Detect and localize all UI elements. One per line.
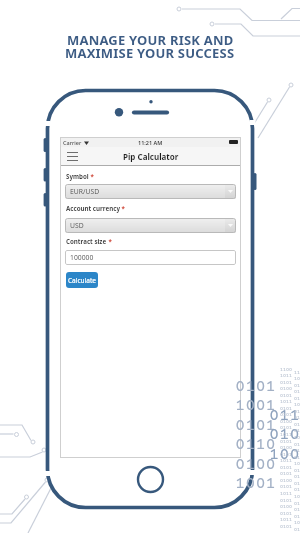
staticText: EUR/USD bbox=[70, 187, 100, 196]
staticText: * bbox=[107, 237, 112, 245]
staticText: * bbox=[120, 204, 125, 212]
staticText: 100000 bbox=[70, 253, 94, 262]
staticText: 0100 bbox=[294, 507, 300, 513]
staticText: MAXIMISE YOUR SUCCESS bbox=[65, 44, 235, 62]
staticText: MANAGE YOUR RISK AND bbox=[67, 31, 234, 49]
staticText: 0100 bbox=[280, 445, 292, 451]
staticText: 0100 bbox=[280, 504, 292, 510]
staticText: Calculate bbox=[68, 276, 96, 285]
staticText: 1011 bbox=[294, 376, 300, 382]
staticText: 1001 bbox=[269, 446, 300, 465]
staticText: 0101 bbox=[294, 455, 300, 461]
staticText: 1011 bbox=[280, 517, 292, 523]
staticText: 0101 bbox=[294, 396, 300, 402]
staticText: 0101 bbox=[280, 393, 292, 399]
staticText: 0101 bbox=[280, 439, 292, 445]
staticText: 0110 bbox=[235, 436, 276, 455]
staticText: 0100 bbox=[280, 386, 292, 392]
staticText: 0100 bbox=[280, 419, 292, 425]
staticText: Pip Calculator bbox=[123, 151, 179, 162]
staticText: 0101 bbox=[294, 501, 300, 507]
staticText: 0101 bbox=[280, 465, 292, 471]
staticText: * bbox=[89, 172, 94, 180]
button[interactable] bbox=[67, 152, 78, 161]
staticText: 1001 bbox=[235, 397, 276, 416]
staticText: 0101 bbox=[280, 471, 292, 477]
staticText: 0101 bbox=[294, 383, 300, 389]
staticText: 0101 bbox=[294, 428, 300, 434]
staticText: 1011 bbox=[294, 494, 300, 500]
staticText: USD bbox=[70, 221, 84, 230]
staticText: 0100 bbox=[294, 448, 300, 454]
staticText: 0100 bbox=[269, 426, 300, 445]
staticText: 0101 bbox=[294, 474, 300, 480]
staticText: 0101 bbox=[235, 417, 276, 436]
button[interactable]: USD bbox=[65, 218, 236, 233]
staticText: 1100 bbox=[294, 370, 300, 376]
staticText: 0101 bbox=[294, 442, 300, 448]
staticText: 0101 bbox=[294, 409, 300, 415]
staticText: 0100 bbox=[294, 481, 300, 487]
staticText: 0101 bbox=[294, 487, 300, 493]
staticText: 0101 bbox=[294, 514, 300, 520]
staticText: 0101 bbox=[294, 527, 300, 533]
staticText: 1011 bbox=[280, 373, 292, 379]
staticText: 1011 bbox=[280, 432, 292, 438]
staticText: 1011 bbox=[294, 520, 300, 526]
staticText: 0101 bbox=[235, 378, 276, 397]
staticText: 0101 bbox=[280, 524, 292, 530]
staticText: 1011 bbox=[280, 399, 292, 405]
staticText: Symbol bbox=[66, 172, 89, 180]
staticText: Contract size bbox=[66, 237, 107, 245]
staticText: 0101 bbox=[280, 380, 292, 386]
staticText: 0101 bbox=[294, 468, 300, 474]
staticText: 0101 bbox=[280, 498, 292, 504]
staticText: 0100 bbox=[294, 389, 300, 395]
staticText: 0100 bbox=[280, 478, 292, 484]
staticText: 0101 bbox=[280, 484, 292, 490]
staticText: 0101 bbox=[280, 425, 292, 431]
staticText: 0110 bbox=[269, 407, 300, 426]
staticText: 1011 bbox=[294, 461, 300, 467]
staticText: 0101 bbox=[280, 452, 292, 458]
staticText: 0101 bbox=[280, 406, 292, 412]
button[interactable]: EUR/USD bbox=[65, 184, 236, 199]
staticText: 1001 bbox=[235, 475, 276, 494]
staticText: 1100 bbox=[280, 367, 292, 373]
button[interactable]: Calculate bbox=[66, 272, 98, 288]
staticText: 1011 bbox=[280, 491, 292, 497]
staticText: 0101 bbox=[280, 511, 292, 517]
staticText: Carrier bbox=[63, 139, 82, 146]
staticText: 0101 bbox=[294, 415, 300, 421]
staticText: 0100 bbox=[235, 456, 276, 475]
staticText: 1011 bbox=[280, 458, 292, 464]
staticText: 11:21 AM bbox=[138, 139, 163, 146]
staticText: 0101 bbox=[280, 412, 292, 418]
staticText: 0100 bbox=[294, 422, 300, 428]
staticText: 1011 bbox=[294, 435, 300, 441]
button[interactable]: 100000 bbox=[65, 250, 236, 265]
staticText: Account currency bbox=[66, 204, 120, 212]
staticText: 1011 bbox=[294, 402, 300, 408]
